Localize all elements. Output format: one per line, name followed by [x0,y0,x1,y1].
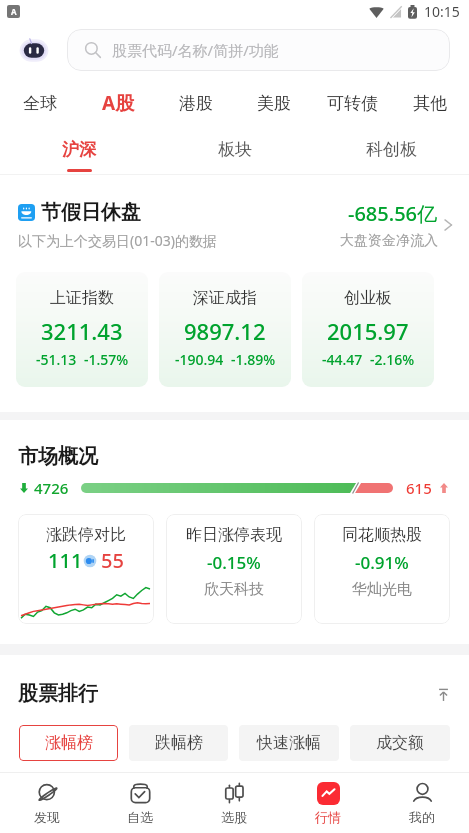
button[interactable]: 成交额 [350,725,450,761]
staticText: 跌幅榜 [155,733,203,753]
staticText: 沪深 [62,139,96,160]
button[interactable]: 发现 [0,782,93,825]
button[interactable]: 我的 [375,782,469,825]
staticText: 发现 [34,809,60,825]
staticText: 10:15 [424,2,460,21]
staticText: 同花顺热股 [342,525,422,545]
staticText: 其他 [413,93,447,114]
staticText: 大盘资金净流入 [340,232,438,250]
staticText: 创业板 [344,288,392,308]
staticText: 选股 [221,809,247,825]
staticText: 上证指数 [50,288,114,308]
staticText: 深证成指 [193,288,257,308]
staticText: 自选 [127,809,153,825]
staticText: 快速涨幅 [257,733,321,753]
staticText: A股 [102,90,135,116]
button[interactable]: 上证指数 [16,272,148,387]
staticText: 以下为上个交易日(01-03)的数据 [18,231,217,250]
staticText: 3211.43 [41,316,123,346]
staticText: -190.94 [175,350,224,369]
staticText: -1.57% [84,350,129,369]
button[interactable]: 跌幅榜 [129,725,228,761]
staticText: 4726 [34,478,69,498]
staticText: 市场概况 [18,444,98,469]
staticText: -1.89% [231,350,276,369]
staticText: 华灿光电 [352,580,412,599]
staticText: 9897.12 [184,316,266,346]
button[interactable]: 昨日涨停表现 [166,514,302,624]
button[interactable]: 自选 [93,782,187,825]
staticText: 我的 [409,809,435,825]
staticText: A [11,6,17,17]
staticText: -685.56亿 [348,200,438,227]
staticText: 成交额 [376,733,424,753]
button[interactable]: 节假日休盘 [18,200,453,250]
button[interactable]: 行情 [281,782,375,825]
staticText: 港股 [179,93,213,114]
staticText: 节假日休盘 [41,200,141,225]
staticText: 615 [406,478,432,498]
button[interactable]: 涨跌停对比 [18,514,154,624]
button[interactable]: 快速涨幅 [239,725,339,761]
button[interactable]: 其他 [391,93,469,114]
staticText: 欣天科技 [204,580,264,599]
staticText: 111 [48,547,83,574]
button[interactable]: Scroll to top [433,684,453,704]
staticText: -44.47 [322,350,363,369]
button[interactable]: 选股 [187,782,281,825]
staticText: 涨跌停对比 [46,525,126,545]
staticText: -0.15% [207,551,261,574]
button[interactable]: 沪深 [0,128,157,172]
button[interactable]: 深证成指 [159,272,291,387]
staticText: 科创板 [366,139,417,160]
staticText: 股票代码/名称/简拼/功能 [112,40,279,60]
button[interactable]: 可转债 [313,93,391,114]
staticText: 股票排行 [18,681,98,706]
staticText: 可转债 [327,93,378,114]
staticText: 昨日涨停表现 [186,525,282,545]
button[interactable]: 全球 [0,93,79,114]
button[interactable]: 涨幅榜 [19,725,118,761]
button[interactable]: 板块 [157,128,313,169]
staticText: -2.16% [370,350,415,369]
button[interactable]: 创业板 [302,272,434,387]
staticText: 美股 [257,93,291,114]
staticText: 2015.97 [327,316,409,346]
button[interactable]: 港股 [157,93,235,114]
staticText: 涨幅榜 [45,733,93,753]
staticText: 55 [101,547,124,574]
button[interactable]: 同花顺热股 [314,514,450,624]
staticText: -51.13 [36,350,77,369]
button[interactable]: 股票代码/名称/简拼/功能 [67,29,450,71]
button[interactable]: 美股 [235,93,313,114]
staticText: 行情 [315,809,341,825]
button[interactable]: 科创板 [313,128,469,169]
staticText: 全球 [23,93,57,114]
button[interactable]: A股 [79,90,157,116]
staticText: -0.91% [355,551,409,574]
button[interactable]: AI assistant [19,36,49,64]
staticText: 板块 [218,139,252,160]
